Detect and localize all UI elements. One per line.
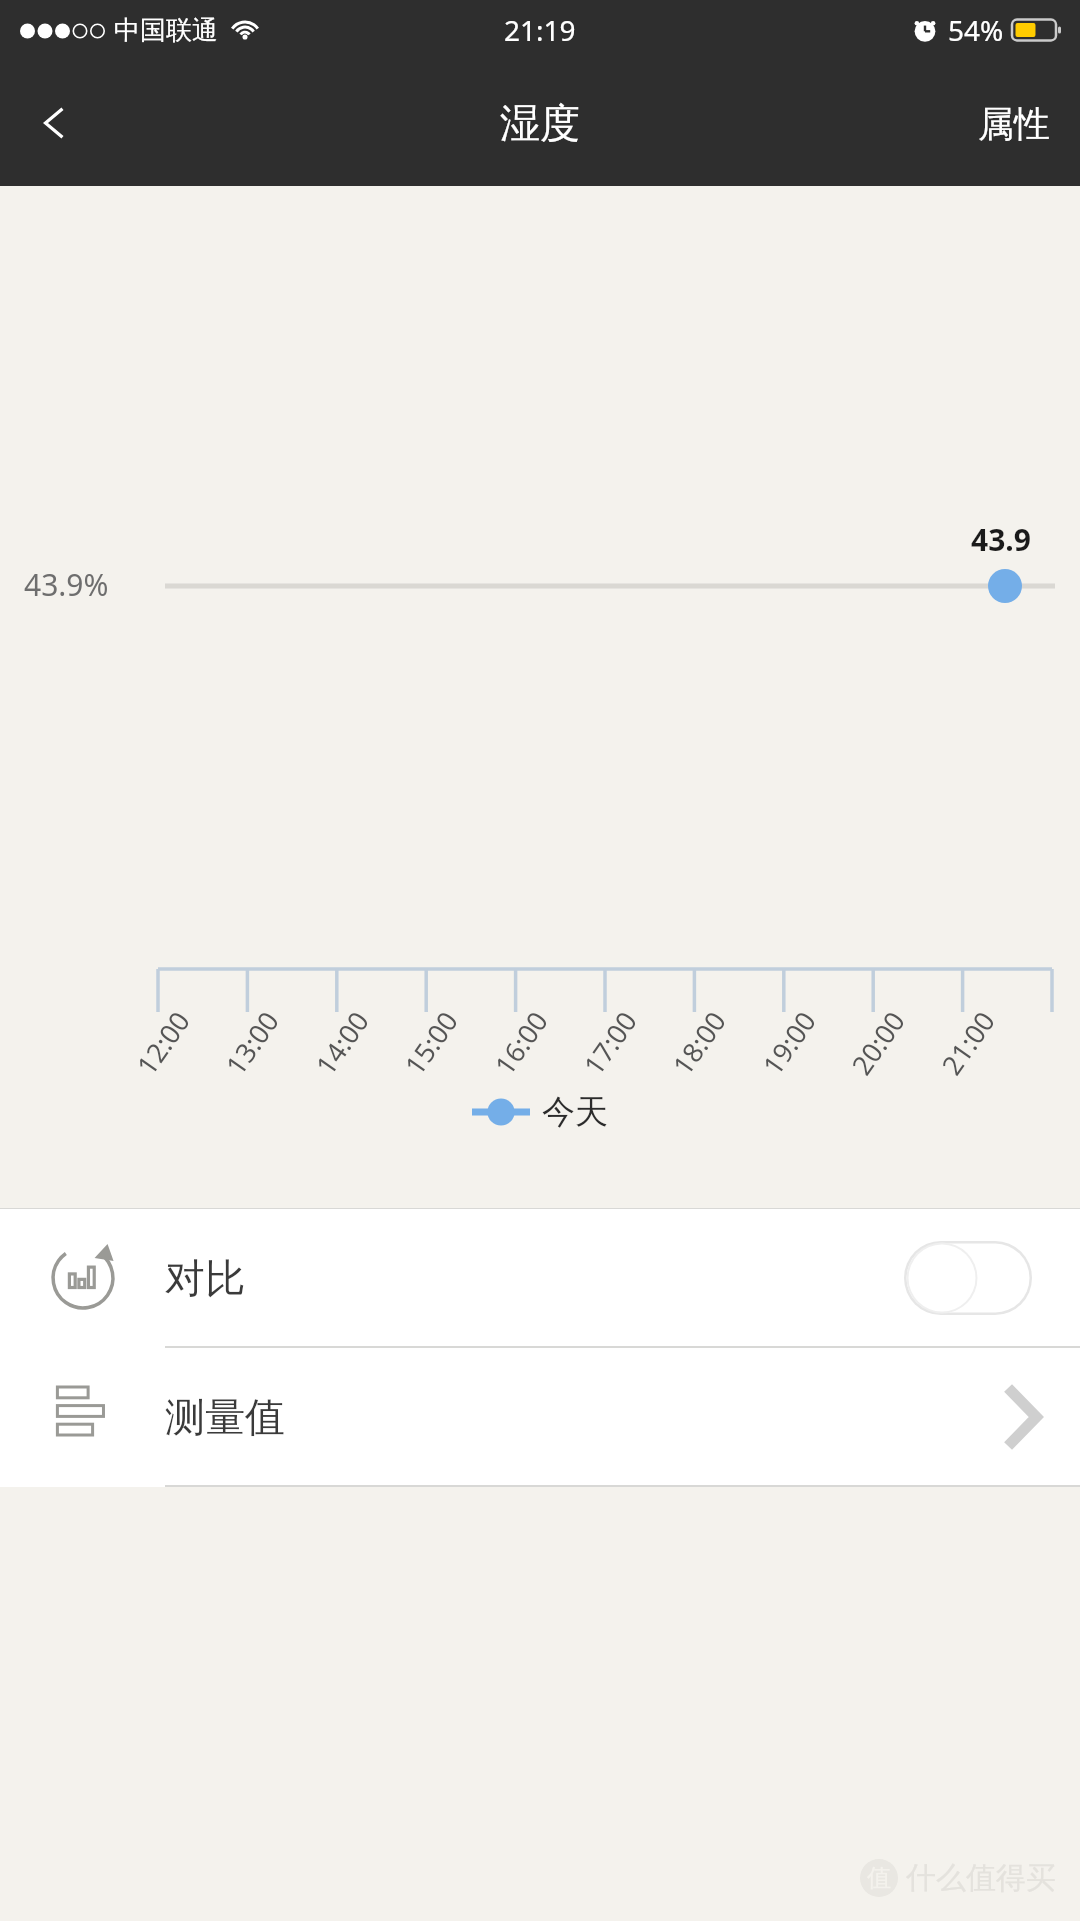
- staticText: 43.9%: [24, 564, 109, 605]
- staticText: 54%: [948, 11, 1004, 49]
- button[interactable]: 对比 toggle: [904, 1241, 1032, 1315]
- staticText: 16:00: [486, 1003, 556, 1082]
- staticText: 属性: [978, 101, 1050, 146]
- staticText: 对比: [165, 1253, 904, 1303]
- staticText: 15:00: [396, 1003, 466, 1082]
- button[interactable]: 测量值: [0, 1348, 1080, 1485]
- staticText: 值: [867, 1863, 891, 1893]
- staticText: 测量值: [165, 1392, 1004, 1442]
- staticText: 21:00: [933, 1003, 1003, 1082]
- staticText: 中国联通: [114, 14, 218, 47]
- staticText: 13:00: [217, 1003, 287, 1082]
- button[interactable]: Back: [0, 68, 110, 178]
- staticText: 什么值得买: [906, 1859, 1056, 1897]
- staticText: 21:19: [504, 11, 576, 49]
- button[interactable]: 对比: [0, 1209, 1080, 1346]
- staticText: 14:00: [307, 1003, 377, 1082]
- staticText: 湿度: [500, 98, 580, 148]
- staticText: 今天: [542, 1091, 608, 1133]
- staticText: 12:00: [128, 1003, 198, 1082]
- staticText: 19:00: [754, 1003, 824, 1082]
- button[interactable]: 属性: [948, 68, 1080, 178]
- staticText: 17:00: [575, 1003, 645, 1082]
- staticText: 43.9: [971, 519, 1031, 560]
- staticText: 18:00: [664, 1003, 734, 1082]
- staticText: 20:00: [843, 1003, 913, 1082]
